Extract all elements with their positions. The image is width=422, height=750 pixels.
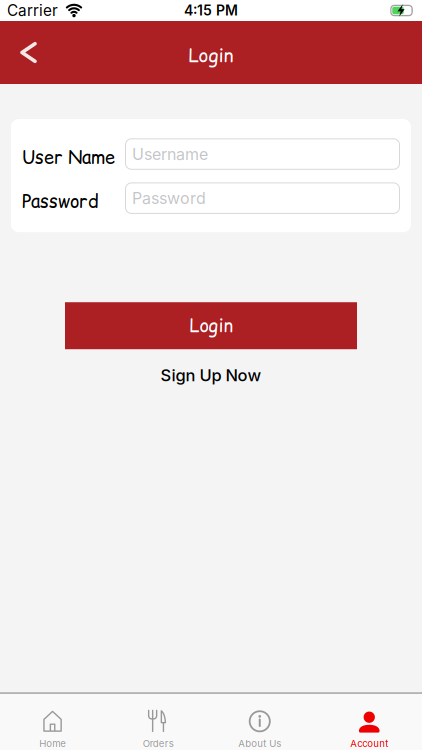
staticText: Account <box>350 738 388 749</box>
staticText: Home <box>39 738 66 749</box>
staticText: Carrier <box>7 1 58 20</box>
staticText: 4:15 PM <box>184 2 238 19</box>
staticText: Username <box>132 144 208 164</box>
staticText: About Us <box>238 738 281 749</box>
staticText: Login <box>189 313 232 338</box>
staticText: Orders <box>143 738 174 749</box>
staticText: Sign Up Now <box>160 365 261 385</box>
staticText: User Name <box>22 145 115 170</box>
staticText: Password <box>22 189 99 214</box>
staticText: Login <box>188 42 233 69</box>
staticText: Password <box>132 188 206 208</box>
